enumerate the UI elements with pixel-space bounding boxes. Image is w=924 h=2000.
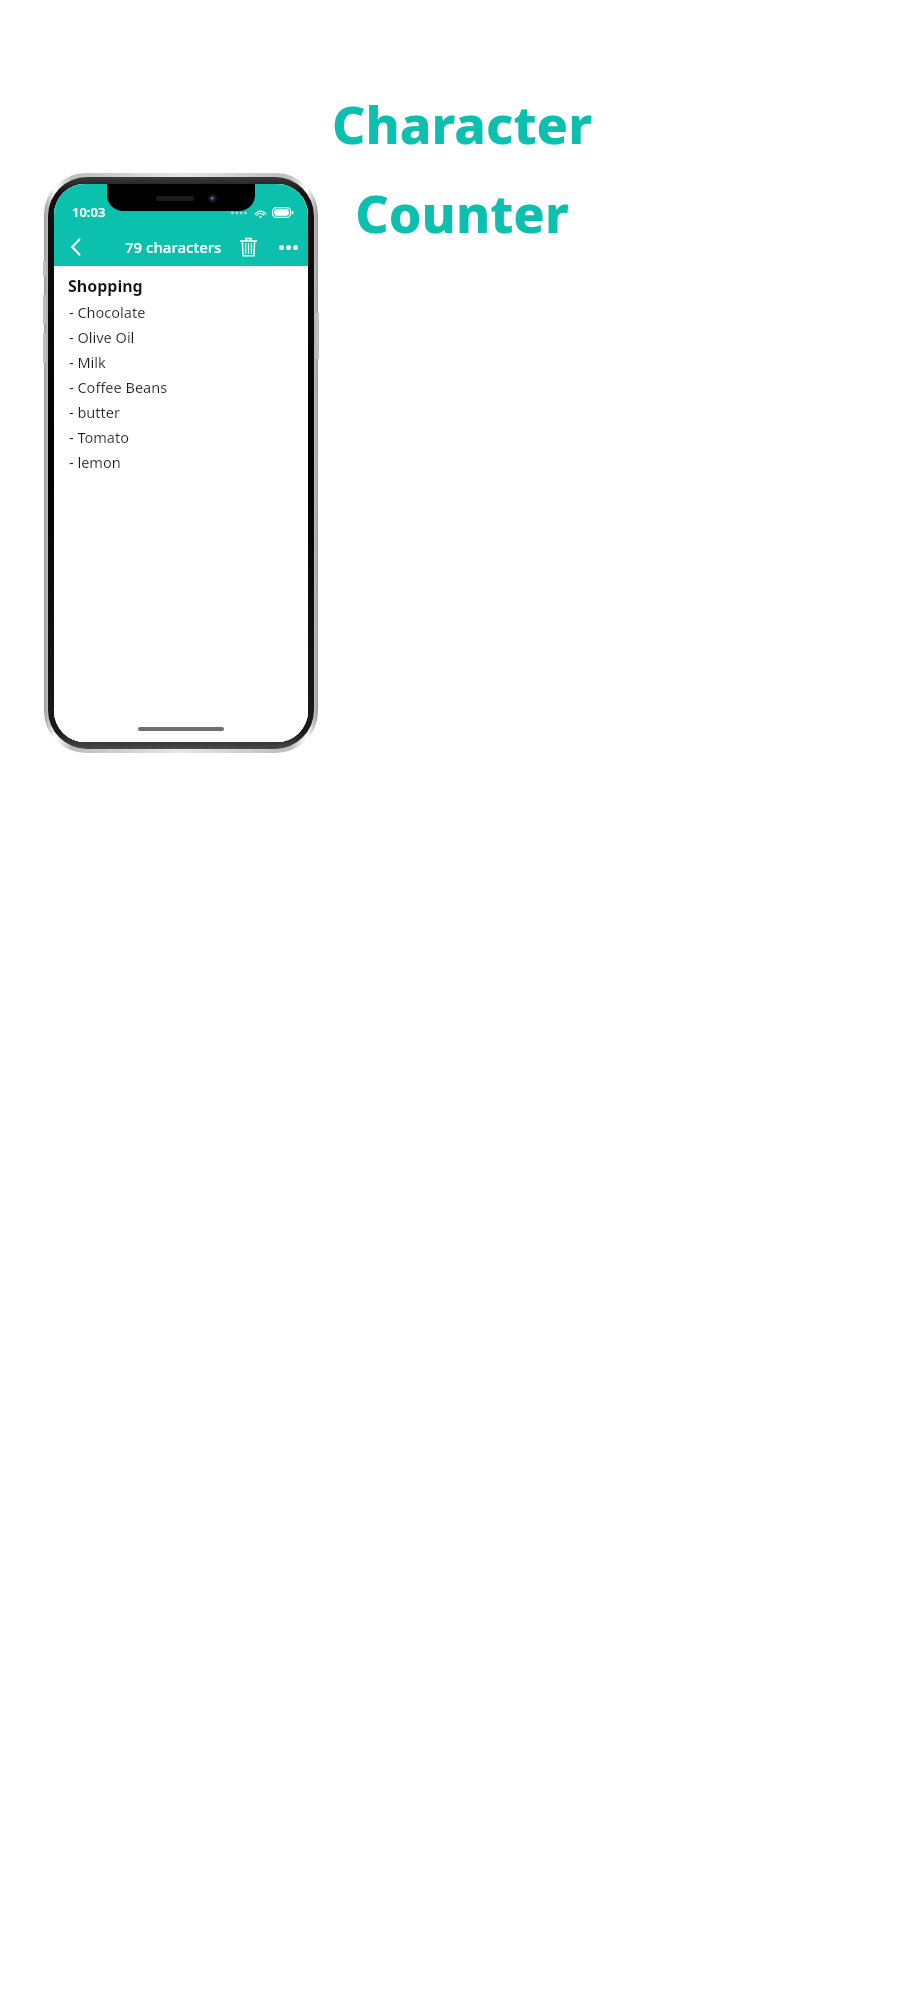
staticText: Shopping: [68, 275, 143, 297]
staticText: - Coffee Beans: [69, 377, 168, 397]
button[interactable]: More options: [268, 228, 308, 266]
button[interactable]: Back: [54, 228, 98, 266]
staticText: - Milk: [69, 352, 106, 372]
staticText: - butter: [69, 402, 120, 422]
staticText: Counter: [355, 177, 569, 248]
button[interactable]: Delete: [228, 228, 268, 266]
staticText: 10:03: [72, 203, 106, 221]
staticText: - lemon: [69, 452, 121, 472]
staticText: - Chocolate: [69, 302, 146, 322]
staticText: 79 characters: [125, 237, 222, 257]
staticText: Character: [332, 88, 592, 159]
staticText: - Olive Oil: [69, 327, 135, 347]
staticText: - Tomato: [69, 427, 129, 447]
